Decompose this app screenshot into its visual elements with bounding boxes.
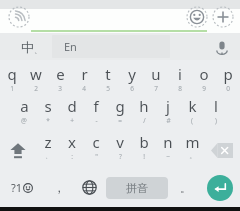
button[interactable]: l	[204, 96, 228, 132]
staticText: 5	[106, 84, 110, 93]
staticText: 中	[21, 39, 34, 55]
staticText: z	[44, 132, 52, 152]
staticText: t	[105, 64, 111, 84]
button[interactable]: Microphone	[212, 37, 232, 57]
button[interactable]: q	[0, 64, 24, 96]
button[interactable]: 。	[170, 168, 200, 207]
staticText: /	[143, 116, 146, 125]
staticText: 1	[10, 84, 14, 93]
staticText: x	[68, 132, 76, 152]
staticText: o	[199, 64, 209, 84]
staticText: u	[151, 64, 161, 84]
button[interactable]: n	[156, 132, 180, 168]
staticText: v	[116, 132, 124, 152]
staticText: 。	[180, 181, 191, 195]
button[interactable]: j	[156, 96, 180, 132]
button[interactable]: 中	[18, 35, 44, 59]
button[interactable]: ?1	[0, 168, 44, 207]
staticText: q	[7, 64, 17, 84]
staticText: *	[46, 116, 50, 125]
button[interactable]: Emoji	[186, 6, 208, 28]
button[interactable]: y	[120, 64, 144, 96]
button[interactable]: Change language	[74, 168, 104, 207]
staticText: En	[64, 39, 77, 54]
staticText: 、	[45, 152, 52, 160]
staticText: h	[139, 96, 149, 116]
button[interactable]: Add	[211, 5, 235, 29]
staticText: 9	[202, 84, 206, 93]
button[interactable]: a	[12, 96, 36, 132]
button[interactable]: u	[144, 64, 168, 96]
button[interactable]: h	[132, 96, 156, 132]
button[interactable]: v	[108, 132, 132, 168]
staticText: 3	[58, 84, 62, 93]
staticText: =	[118, 116, 122, 125]
staticText: )	[215, 116, 217, 125]
staticText: k	[188, 96, 197, 116]
staticText: 6	[130, 84, 134, 93]
button[interactable]: c	[84, 132, 108, 168]
staticText: j	[166, 96, 170, 116]
staticText: b	[139, 132, 149, 152]
staticText: f	[93, 96, 99, 116]
staticText: d	[67, 96, 77, 116]
staticText: #	[166, 116, 171, 125]
staticText: 4	[82, 84, 86, 93]
staticText: n	[163, 132, 173, 152]
button[interactable]: r	[72, 64, 96, 96]
staticText: ，	[53, 180, 65, 195]
button[interactable]: d	[60, 96, 84, 132]
staticText: 8	[178, 84, 182, 93]
button[interactable]: b	[132, 132, 156, 168]
staticText: !	[143, 152, 145, 161]
staticText: c	[92, 132, 100, 152]
staticText: 。	[189, 152, 196, 160]
button[interactable]: o	[192, 64, 216, 96]
staticText: p	[223, 64, 233, 84]
button[interactable]: x	[60, 132, 84, 168]
button[interactable]: k	[180, 96, 204, 132]
staticText: g	[115, 96, 125, 116]
button[interactable]: i	[168, 64, 192, 96]
staticText: ?1	[11, 180, 23, 195]
staticText: y	[128, 64, 136, 84]
button[interactable]: Backspace	[204, 132, 240, 168]
staticText: e	[56, 64, 65, 84]
staticText: ~	[166, 152, 170, 161]
button[interactable]: 拼音	[106, 177, 168, 199]
button[interactable]: Shift	[0, 132, 36, 168]
staticText: 0	[226, 84, 230, 93]
staticText: i	[178, 64, 182, 84]
button[interactable]: e	[48, 64, 72, 96]
staticText: l	[214, 96, 218, 116]
button[interactable]: z	[36, 132, 60, 168]
staticText: 7	[154, 84, 158, 93]
staticText: a	[20, 96, 29, 116]
button[interactable]: s	[36, 96, 60, 132]
staticText: 、	[34, 45, 42, 55]
staticText: @	[21, 116, 27, 125]
staticText: w	[30, 64, 42, 84]
button[interactable]: Enter	[207, 175, 233, 201]
staticText: 拼音	[126, 181, 148, 195]
button[interactable]: p	[216, 64, 240, 96]
staticText: (	[191, 116, 193, 125]
staticText: -	[95, 116, 98, 125]
staticText: 2	[34, 84, 38, 93]
button[interactable]: m	[180, 132, 204, 168]
button[interactable]: En	[52, 35, 170, 58]
staticText: s	[44, 96, 52, 116]
button[interactable]: ，	[44, 168, 74, 207]
staticText: "	[95, 152, 98, 161]
staticText: +	[70, 116, 74, 125]
button[interactable]: w	[24, 64, 48, 96]
button[interactable]: t	[96, 64, 120, 96]
button[interactable]: g	[108, 96, 132, 132]
button[interactable]: Voice input	[6, 4, 32, 30]
staticText: :	[71, 152, 73, 161]
staticText: m	[185, 132, 200, 152]
button[interactable]: f	[84, 96, 108, 132]
staticText: r	[81, 64, 88, 84]
staticText: ?	[119, 152, 122, 161]
